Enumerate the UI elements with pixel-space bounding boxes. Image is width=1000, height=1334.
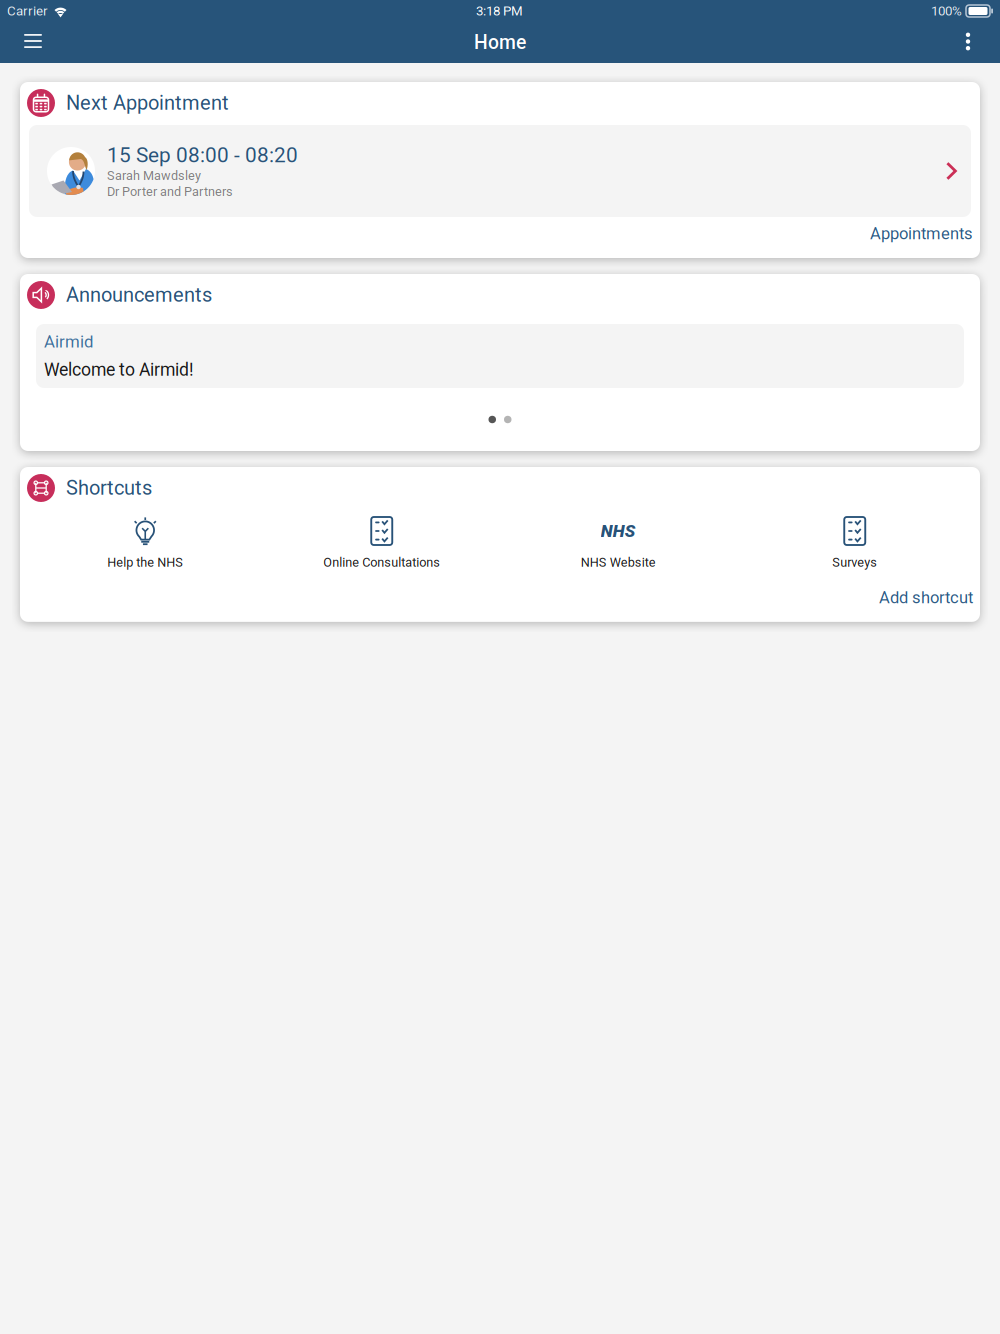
button[interactable]: Help the NHS <box>27 516 263 570</box>
staticText: 3:18 PM <box>476 3 523 19</box>
staticText: NHS Website <box>581 555 656 570</box>
button[interactable]: Airmid <box>27 324 973 388</box>
button[interactable]: Add shortcut <box>27 570 973 614</box>
staticText: Sarah Mawdsley <box>107 168 201 183</box>
staticText: Shortcuts <box>66 476 152 500</box>
button[interactable]: Surveys <box>736 516 973 570</box>
staticText: Announcements <box>66 283 212 307</box>
staticText: Home <box>474 31 526 54</box>
staticText: NHS <box>601 521 636 541</box>
staticText: 100% <box>931 3 962 19</box>
button[interactable]: Menu <box>15 22 51 63</box>
button[interactable]: Online Consultations <box>263 516 500 570</box>
staticText: Next Appointment <box>66 91 229 115</box>
button[interactable]: 15 Sep 08:00 - 08:20 <box>27 125 973 217</box>
staticText: Airmid <box>44 332 93 351</box>
button[interactable]: Appointments <box>27 217 973 250</box>
staticText: Appointments <box>870 224 973 243</box>
staticText: Welcome to Airmid! <box>44 359 194 380</box>
button[interactable]: More options <box>949 22 987 63</box>
staticText: Add shortcut <box>879 588 973 607</box>
staticText: Dr Porter and Partners <box>107 184 233 199</box>
staticText: Surveys <box>832 555 877 570</box>
staticText: Online Consultations <box>323 555 440 570</box>
button[interactable]: NHS <box>500 516 736 570</box>
staticText: Help the NHS <box>107 555 183 570</box>
staticText: 15 Sep 08:00 - 08:20 <box>107 143 298 167</box>
staticText: Carrier <box>7 3 48 19</box>
